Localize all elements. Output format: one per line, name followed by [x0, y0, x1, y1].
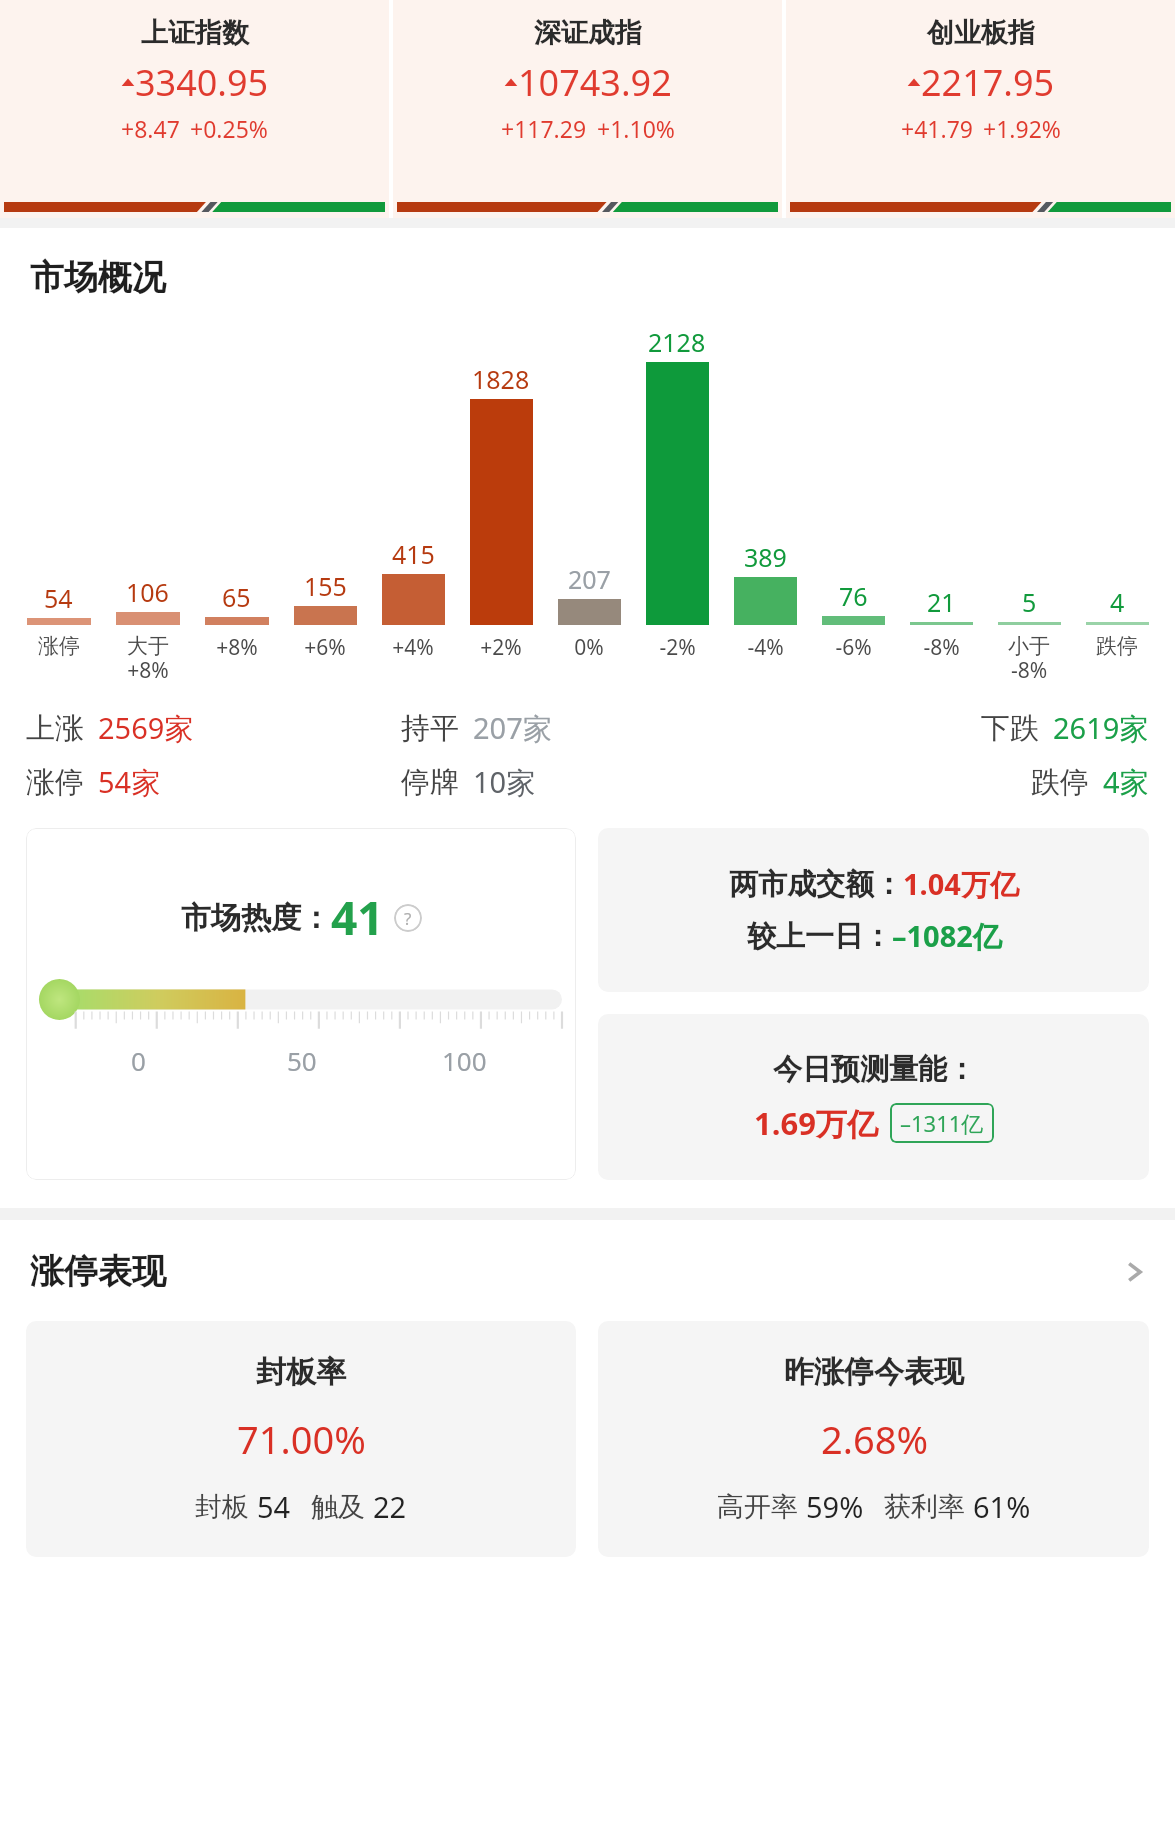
staticText: 155 — [304, 569, 347, 603]
button[interactable]: 昨涨停今表现 — [598, 1321, 1149, 1557]
staticText: 3340.95 — [135, 58, 269, 107]
staticText: 小于 -8% — [1008, 633, 1050, 684]
staticText: 389 — [744, 540, 787, 574]
staticText: 61% — [973, 1487, 1031, 1526]
staticText: 下跌 — [981, 710, 1039, 747]
staticText: 市场热度： — [181, 899, 331, 937]
staticText: 415 — [392, 537, 435, 571]
staticText: +6% — [304, 633, 346, 662]
staticText: 停牌 — [401, 764, 459, 801]
staticText: 2569家 — [98, 708, 194, 748]
button[interactable]: 帮助 — [394, 904, 422, 932]
staticText: +2% — [480, 633, 522, 662]
staticText: 54 — [44, 581, 73, 615]
staticText: 两市成交额： — [729, 866, 903, 903]
button[interactable]: 深证成指 — [393, 0, 782, 218]
staticText: 22 — [373, 1487, 407, 1526]
staticText: –1311亿 — [900, 1108, 984, 1138]
staticText: 54 — [257, 1487, 291, 1526]
button[interactable]: 市场热度： — [26, 828, 576, 1180]
button[interactable]: 封板率 — [26, 1321, 576, 1557]
staticText: 上证指数 — [141, 16, 249, 50]
staticText: +8% — [216, 633, 258, 662]
staticText: –1082亿 — [892, 916, 1002, 956]
button[interactable]: 涨停表现 — [30, 1250, 1145, 1293]
staticText: ? — [404, 907, 412, 930]
staticText: 1.69万亿 — [754, 1102, 878, 1144]
staticText: 65 — [222, 580, 251, 614]
button[interactable]: 两市成交额： — [598, 828, 1149, 992]
staticText: -4% — [747, 633, 784, 662]
staticText: 21 — [927, 585, 956, 619]
staticText: 2619家 — [1053, 708, 1149, 748]
staticText: 涨停 — [38, 633, 80, 659]
other: 更多 — [1123, 1261, 1145, 1283]
button[interactable]: 今日预测量能： — [598, 1014, 1149, 1180]
staticText: 0 — [131, 1043, 146, 1078]
staticText: 4 — [1110, 585, 1125, 619]
staticText: 触及 — [311, 1490, 365, 1524]
staticText: 54家 — [98, 762, 161, 802]
staticText: 市场概况 — [30, 256, 166, 299]
staticText: 71.00% — [237, 1413, 366, 1465]
staticText: +1.10% — [597, 113, 675, 144]
staticText: 较上一日： — [747, 918, 892, 955]
staticText: 207家 — [473, 708, 552, 748]
staticText: +41.79 — [901, 113, 973, 144]
staticText: 高开率 — [717, 1490, 798, 1524]
staticText: 跌停 — [1031, 764, 1089, 801]
staticText: 10743.92 — [518, 58, 672, 107]
staticText: +1.92% — [983, 113, 1061, 144]
staticText: -6% — [835, 633, 872, 662]
staticText: 4家 — [1103, 762, 1149, 802]
button[interactable]: 上证指数 — [0, 0, 389, 218]
staticText: 获利率 — [884, 1490, 965, 1524]
staticText: 深证成指 — [534, 16, 642, 50]
staticText: 0% — [574, 633, 604, 662]
staticText: 大于 +8% — [127, 633, 169, 684]
staticText: 创业板指 — [927, 16, 1035, 50]
staticText: 涨停表现 — [30, 1250, 166, 1293]
staticText: +0.25% — [190, 113, 268, 144]
staticText: 跌停 — [1096, 633, 1138, 659]
button[interactable]: 创业板指 — [786, 0, 1175, 218]
staticText: 昨涨停今表现 — [784, 1353, 964, 1391]
staticText: 今日预测量能： — [773, 1051, 976, 1088]
staticText: 50 — [287, 1043, 317, 1078]
staticText: 封板率 — [256, 1353, 346, 1391]
staticText: 41 — [331, 886, 384, 949]
staticText: +8.47 — [121, 113, 180, 144]
staticText: -2% — [659, 633, 696, 662]
staticText: 5 — [1022, 585, 1037, 619]
staticText: 1828 — [472, 362, 530, 396]
staticText: 持平 — [401, 710, 459, 747]
staticText: 2128 — [648, 325, 706, 359]
staticText: 2.68% — [821, 1413, 928, 1465]
staticText: 10家 — [473, 762, 536, 802]
staticText: +117.29 — [501, 113, 587, 144]
staticText: 207 — [568, 562, 611, 596]
staticText: 涨停 — [26, 764, 84, 801]
staticText: 上涨 — [26, 710, 84, 747]
staticText: 100 — [442, 1043, 487, 1078]
staticText: 76 — [839, 579, 868, 613]
staticText: 2217.95 — [921, 58, 1055, 107]
staticText: 59% — [806, 1487, 864, 1526]
staticText: 106 — [126, 575, 169, 609]
staticText: +4% — [392, 633, 434, 662]
staticText: 1.04万亿 — [903, 864, 1019, 904]
staticText: 封板 — [195, 1490, 249, 1524]
staticText: -8% — [923, 633, 960, 662]
